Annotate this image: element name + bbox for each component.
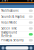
staticText: ıll ≡ bbox=[26, 0, 32, 2]
staticText: Privacy & Security bbox=[1, 38, 23, 42]
button[interactable]: Focus Mode bbox=[0, 20, 34, 25]
staticText: 9:41 bbox=[1, 0, 8, 2]
button[interactable]: Send bbox=[29, 46, 32, 49]
staticText: Focus Mode bbox=[1, 21, 17, 24]
button[interactable]: Background Refresh bbox=[0, 32, 34, 37]
staticText: Screen Time bbox=[1, 27, 17, 30]
button[interactable]: Camera bbox=[1, 46, 4, 49]
staticText: Sounds & Haptics bbox=[1, 15, 24, 18]
staticText: Background Refresh bbox=[1, 31, 17, 38]
button[interactable]: Screen Time bbox=[0, 26, 34, 31]
button[interactable]: Privacy & Security bbox=[0, 37, 34, 43]
button[interactable]: Sounds & Haptics bbox=[0, 14, 34, 19]
staticText: Notifications bbox=[1, 9, 18, 12]
button[interactable]: Notifications bbox=[0, 8, 34, 13]
